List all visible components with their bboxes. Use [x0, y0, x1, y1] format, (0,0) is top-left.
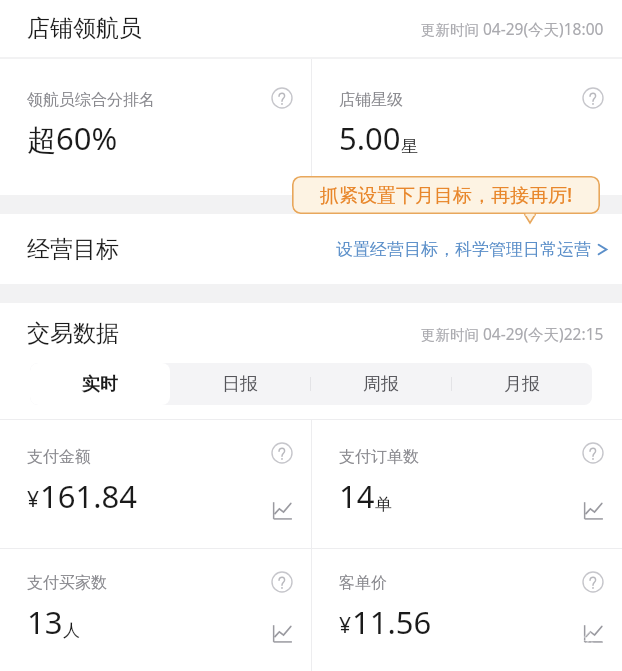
staticText: 5.00: [339, 117, 401, 159]
button[interactable]: 支付金额: [0, 420, 311, 548]
staticText: 周报: [363, 373, 399, 396]
button[interactable]: 帮助说明: [582, 571, 604, 593]
staticText: 设置经营目标，科学管理日常运营: [336, 239, 591, 260]
button[interactable]: 店铺星级: [312, 59, 622, 195]
staticText: 抓紧设置下月目标，再接再厉!: [320, 182, 573, 208]
staticText: 60%: [56, 117, 118, 159]
staticText: 14: [339, 475, 375, 517]
button[interactable]: 周报: [310, 363, 451, 405]
staticText: 支付买家数: [27, 573, 107, 593]
button[interactable]: 帮助说明: [582, 442, 604, 464]
staticText: 领航员综合分排名: [27, 90, 155, 110]
button[interactable]: 客单价: [312, 549, 622, 671]
button[interactable]: 领航员综合分排名: [0, 59, 311, 195]
staticText: 161.84: [40, 475, 137, 517]
staticText: 支付金额: [27, 447, 91, 467]
button[interactable]: 查看趋势图表: [582, 623, 604, 645]
staticText: 04-29(今天)18:00: [483, 18, 604, 39]
staticText: 更新时间: [421, 324, 483, 344]
staticText: 支付订单数: [339, 447, 419, 467]
staticText: 单: [375, 494, 392, 515]
button[interactable]: 帮助说明: [582, 87, 604, 109]
staticText: 更新时间: [421, 19, 483, 39]
staticText: 经营目标: [27, 235, 119, 264]
staticText: 店铺领航员: [27, 14, 142, 43]
staticText: 日报: [222, 373, 258, 396]
button[interactable]: 支付订单数: [312, 420, 622, 548]
button[interactable]: 查看趋势图表: [271, 623, 293, 645]
button[interactable]: 帮助说明: [271, 442, 293, 464]
button[interactable]: 月报: [451, 363, 592, 405]
button[interactable]: 实时: [30, 363, 170, 405]
staticText: 人: [63, 620, 80, 641]
button[interactable]: 抓紧设置下月目标，再接再厉!: [292, 176, 600, 214]
button[interactable]: 日报: [170, 363, 310, 405]
staticText: ¥: [339, 611, 352, 640]
staticText: 店铺星级: [339, 90, 403, 110]
staticText: 13: [27, 601, 63, 643]
button[interactable]: 设置经营目标，科学管理日常运营: [328, 231, 622, 268]
staticText: 交易数据: [27, 319, 119, 348]
button[interactable]: 支付买家数: [0, 549, 311, 671]
button[interactable]: 帮助说明: [271, 571, 293, 593]
staticText: 超: [27, 122, 56, 159]
button[interactable]: 帮助说明: [271, 87, 293, 109]
staticText: 月报: [504, 373, 540, 396]
staticText: ¥: [27, 485, 40, 514]
button[interactable]: 查看趋势图表: [271, 500, 293, 522]
button[interactable]: 查看趋势图表: [582, 500, 604, 522]
staticText: 实时: [82, 373, 118, 396]
staticText: 客单价: [339, 573, 387, 593]
staticText: 黄岛主分享会: [496, 628, 598, 649]
staticText: 11.56: [352, 601, 432, 643]
staticText: 04-29(今天)22:15: [483, 323, 604, 344]
staticText: 星: [401, 136, 418, 157]
